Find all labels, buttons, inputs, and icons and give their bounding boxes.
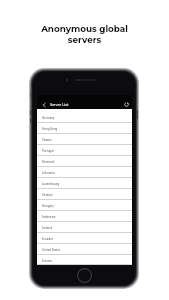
staticText: Denmark [42, 160, 55, 164]
staticText: Hungary [42, 204, 54, 208]
button[interactable]: Taiwan [37, 134, 132, 145]
button[interactable]: Portugal [37, 145, 132, 156]
staticText: Germany [42, 116, 55, 120]
button[interactable]: Estonia [37, 255, 132, 265]
staticText: Luxembourg [42, 182, 60, 186]
staticText: Ecuador [42, 237, 54, 241]
staticText: Portugal [42, 149, 54, 153]
staticText: Ukraine [42, 193, 53, 197]
button[interactable]: Denmark [37, 156, 132, 167]
button[interactable]: Luxembourg [37, 178, 132, 189]
staticText: Iceland [42, 226, 52, 230]
button[interactable]: United States [37, 244, 132, 255]
button[interactable]: Lithuania [37, 167, 132, 178]
button[interactable]: Hungary [37, 200, 132, 211]
staticText: Hong Kong [42, 127, 58, 131]
button[interactable]: Germany [37, 112, 132, 123]
staticText: Lithuania [42, 171, 55, 175]
button[interactable]: Ukraine [37, 189, 132, 200]
staticText: Indonesia [42, 215, 56, 219]
button[interactable]: Back [40, 101, 48, 109]
staticText: Anonymous global servers [41, 23, 128, 46]
staticText: Taiwan [42, 138, 52, 142]
button[interactable]: Indonesia [37, 211, 132, 222]
staticText: Estonia [42, 259, 52, 263]
button[interactable]: Refresh [122, 100, 131, 109]
button[interactable]: Ecuador [37, 233, 132, 244]
staticText: Server List [50, 103, 69, 107]
button[interactable]: Iceland [37, 222, 132, 233]
staticText: United States [42, 248, 61, 252]
button[interactable]: Hong Kong [37, 123, 132, 134]
